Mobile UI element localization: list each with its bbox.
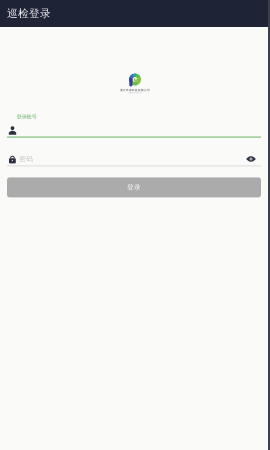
staticText: 密码 [19, 155, 33, 163]
staticText: 登录 [127, 183, 141, 191]
button[interactable]: 显示密码 [246, 156, 256, 162]
staticText: PUJIANG ENVIRO TECH [128, 92, 142, 94]
staticText: 浦江环保科技有限公司 [120, 88, 150, 92]
staticText: 登录账号 [16, 113, 36, 120]
button[interactable]: 登录 [7, 177, 261, 197]
staticText: 巡检登录 [7, 7, 51, 20]
